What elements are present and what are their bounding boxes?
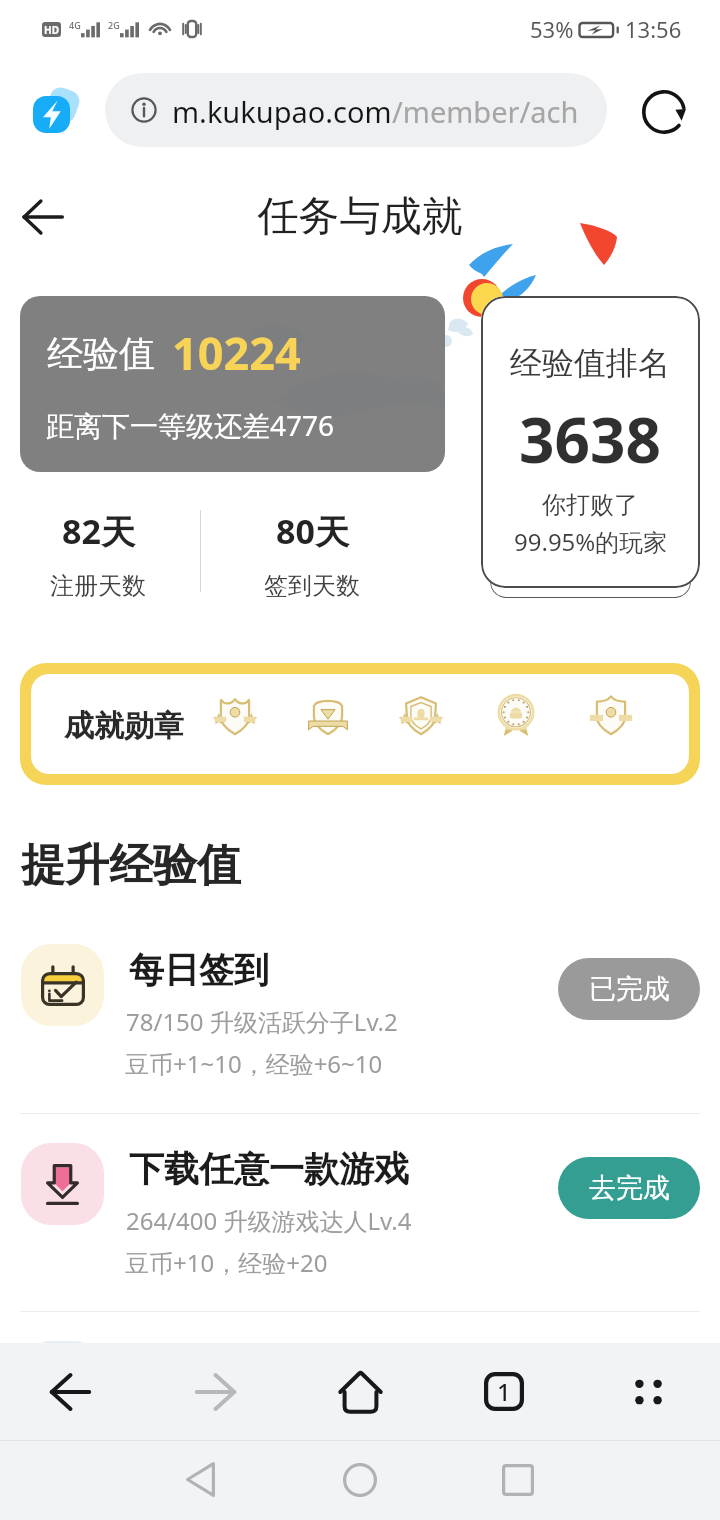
button[interactable]: 下载任意一款游戏 [0,1143,720,1313]
staticText: 已完成 [589,972,670,1006]
button[interactable]: 82天 [8,500,188,601]
staticText: m.kukupao.com [172,92,392,131]
staticText: 注册天数 [50,571,146,601]
button[interactable]: App shortcut [26,84,86,144]
button[interactable]: Home [305,1441,415,1520]
staticText: 80天 [276,508,349,554]
staticText: 2G [108,19,120,31]
staticText: 你打败了 [542,490,638,520]
staticText: 每日签到 [129,948,269,992]
staticText: 任务与成就 [0,191,720,243]
staticText: 豆币+1~10，经验+6~10 [125,1047,383,1080]
button[interactable]: More [599,1343,697,1440]
button[interactable]: Tabs [455,1343,553,1440]
button[interactable] [306,692,350,736]
button[interactable]: m.kukupao.com [105,73,607,147]
staticText: HD [44,23,59,37]
staticText: 经验值排名 [510,343,670,383]
button[interactable]: 已完成 [558,958,700,1020]
staticText: 13:56 [625,14,682,44]
staticText: 距离下一等级还差4776 [46,406,335,444]
staticText: 1 [497,1375,511,1408]
staticText: 78/150 升级活跃分子Lv.2 [126,1005,398,1038]
staticText: 豆币+10，经验+20 [125,1246,328,1279]
button[interactable] [589,692,633,736]
button[interactable]: 经验值 [20,296,445,472]
button[interactable] [399,692,443,736]
staticText: 成就勋章 [64,707,184,745]
button[interactable] [494,692,538,736]
staticText: 10224 [172,322,301,383]
button[interactable]: Home [311,1343,409,1440]
button[interactable]: Back [10,184,76,250]
button[interactable] [213,692,257,736]
button[interactable]: Reload [636,84,692,140]
staticText: 3638 [519,397,661,481]
button[interactable]: 成就勋章 [31,674,689,774]
staticText: 签到天数 [264,571,360,601]
button[interactable]: 去完成 [558,1157,700,1219]
staticText: 4G [69,19,81,31]
staticText: 去完成 [589,1171,670,1205]
staticText: 53% [530,14,574,44]
staticText: 提升经验值 [21,838,241,893]
staticText: 经验值 [47,331,155,376]
staticText: 264/400 升级游戏达人Lv.4 [126,1204,412,1237]
button[interactable]: 经验值排名 [481,296,700,588]
button[interactable]: 80天 [222,500,402,601]
staticText: /member/ach [392,92,579,131]
staticText: 99.95%的玩家 [514,525,668,558]
button[interactable]: Recent apps [463,1441,573,1520]
button[interactable]: Back [21,1343,119,1440]
staticText: 82天 [62,508,135,554]
button[interactable]: Back [145,1441,255,1520]
button[interactable]: Forward [166,1343,264,1440]
staticText: 下载任意一款游戏 [129,1147,409,1191]
button[interactable]: 每日签到 [0,944,720,1114]
